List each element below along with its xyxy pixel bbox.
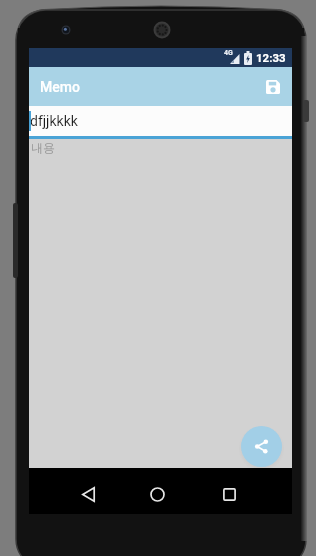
button[interactable]: dfjjkkkk: [29, 106, 292, 136]
staticText: dfjjkkkk: [30, 113, 78, 129]
button[interactable]: [264, 78, 282, 96]
button[interactable]: 내용: [29, 139, 292, 514]
staticText: 내용: [31, 140, 55, 155]
staticText: 12:33: [256, 51, 286, 64]
button[interactable]: [68, 468, 109, 514]
staticText: Memo: [40, 79, 80, 95]
button[interactable]: [241, 426, 282, 467]
button[interactable]: [137, 468, 178, 514]
staticText: 4G: [224, 49, 233, 57]
button[interactable]: [209, 468, 250, 514]
